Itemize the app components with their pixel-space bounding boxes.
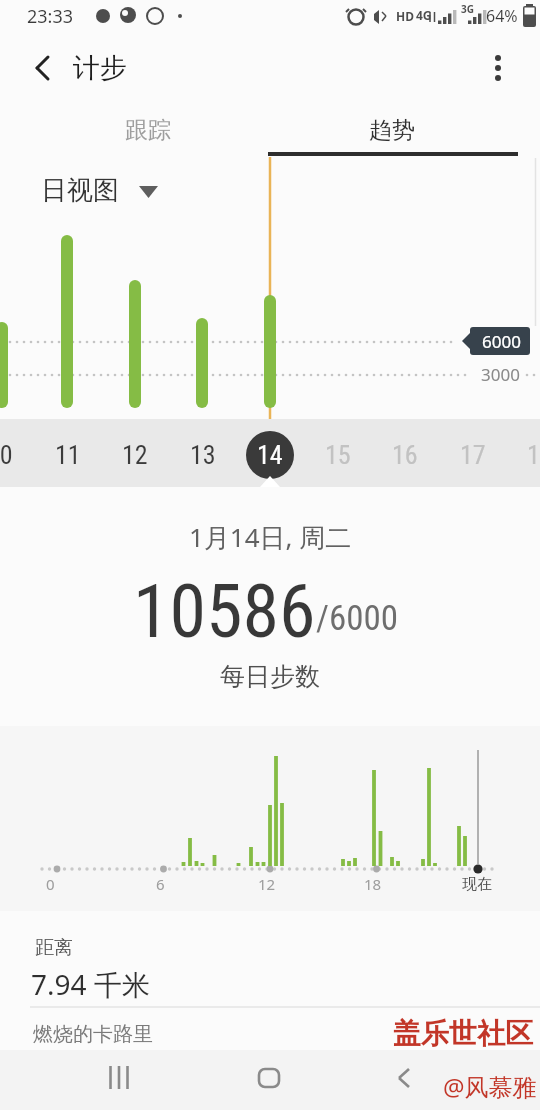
staticText: 18 xyxy=(527,440,540,470)
staticText: 趋势 xyxy=(369,116,415,145)
staticText: 距离 xyxy=(35,936,73,960)
staticText: 15 xyxy=(325,440,351,470)
staticText: /6000 xyxy=(316,598,399,639)
staticText: 1月14日, 周二 xyxy=(189,519,352,555)
staticText: 12 xyxy=(122,440,148,470)
staticText: 跟踪 xyxy=(125,116,171,145)
staticText: 每日步数 xyxy=(220,661,320,692)
staticText: 7.94 千米 xyxy=(31,965,150,1003)
staticText: 11 xyxy=(55,440,81,470)
staticText: 6000 xyxy=(482,330,521,353)
staticText: 4G xyxy=(416,7,432,23)
staticText: 23:33 xyxy=(27,4,74,29)
staticText: 10586 xyxy=(133,568,316,648)
staticText: 64% xyxy=(486,5,518,27)
staticText: 盖乐世社区 xyxy=(393,1016,533,1051)
staticText: 13 xyxy=(190,440,216,470)
staticText: 14 xyxy=(257,440,283,470)
staticText: 燃烧的卡路里 xyxy=(33,1022,153,1047)
staticText: 16 xyxy=(392,440,418,470)
staticText: 日视图 xyxy=(41,174,119,207)
staticText: 0 xyxy=(46,874,55,894)
staticText: 3G xyxy=(461,2,474,16)
staticText: 10 xyxy=(0,440,13,470)
staticText: 12 xyxy=(258,874,276,894)
staticText: 3000 xyxy=(481,363,520,386)
staticText: 6 xyxy=(156,874,165,894)
staticText: 计步 xyxy=(73,51,127,85)
staticText: 现在 xyxy=(462,875,492,894)
staticText: @风慕雅 xyxy=(443,1070,537,1103)
staticText: HD xyxy=(396,8,414,24)
staticText: 17 xyxy=(460,440,486,470)
staticText: 18 xyxy=(364,874,382,894)
